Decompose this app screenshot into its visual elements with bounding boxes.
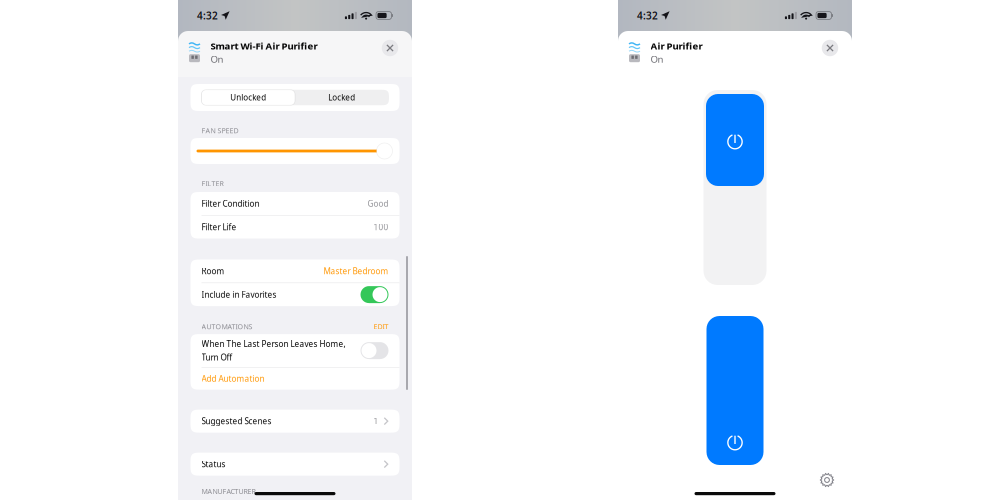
button[interactable]: Status [190, 453, 399, 476]
staticText: EDIT [373, 322, 388, 331]
staticText: MANUFACTURER [201, 486, 255, 496]
staticText: Suggested Scenes [201, 416, 271, 426]
button[interactable]: Unlocked [201, 90, 295, 105]
staticText: Turn Off [201, 352, 232, 363]
button[interactable]: Suggested Scenes [190, 410, 399, 433]
button[interactable]: Add Automation [190, 368, 399, 390]
staticText: Include in Favorites [201, 289, 276, 300]
staticText: 1 [374, 416, 379, 426]
staticText: 100 [373, 222, 388, 232]
staticText: Unlocked [230, 92, 266, 103]
staticText: On [210, 53, 223, 65]
staticText: Room [201, 266, 224, 276]
button[interactable]: Power [706, 94, 764, 186]
button[interactable]: EDIT [373, 322, 388, 331]
staticText: Filter Condition [201, 198, 259, 209]
staticText: FILTER [201, 179, 223, 188]
staticText: 4:32 [197, 9, 218, 22]
staticText: Add Automation [201, 373, 264, 384]
staticText: Locked [328, 92, 355, 103]
button[interactable]: Close [379, 37, 401, 59]
button[interactable]: Filter Life [190, 216, 399, 239]
button[interactable]: Locked [295, 90, 388, 105]
staticText: Master Bedroom [323, 266, 388, 276]
staticText: Status [201, 459, 225, 469]
staticText: On [650, 53, 663, 65]
staticText: Filter Life [201, 222, 236, 232]
staticText: AUTOMATIONS [201, 322, 252, 331]
button[interactable]: When The Last Person Leaves Home, [190, 334, 399, 367]
staticText: 4:32 [637, 9, 658, 22]
button[interactable]: Close [819, 37, 841, 59]
staticText: Air Purifier [650, 39, 702, 52]
staticText: Good [367, 198, 388, 209]
staticText: Smart Wi-Fi Air Purifier [210, 39, 317, 52]
staticText: When The Last Person Leaves Home, [201, 338, 345, 349]
button[interactable]: Settings [820, 473, 834, 487]
button[interactable]: Room [190, 260, 399, 283]
button[interactable]: Filter Condition [190, 192, 399, 215]
button[interactable]: Power [706, 316, 763, 465]
button[interactable]: Include in Favorites [190, 283, 399, 306]
staticText: FAN SPEED [201, 126, 238, 135]
